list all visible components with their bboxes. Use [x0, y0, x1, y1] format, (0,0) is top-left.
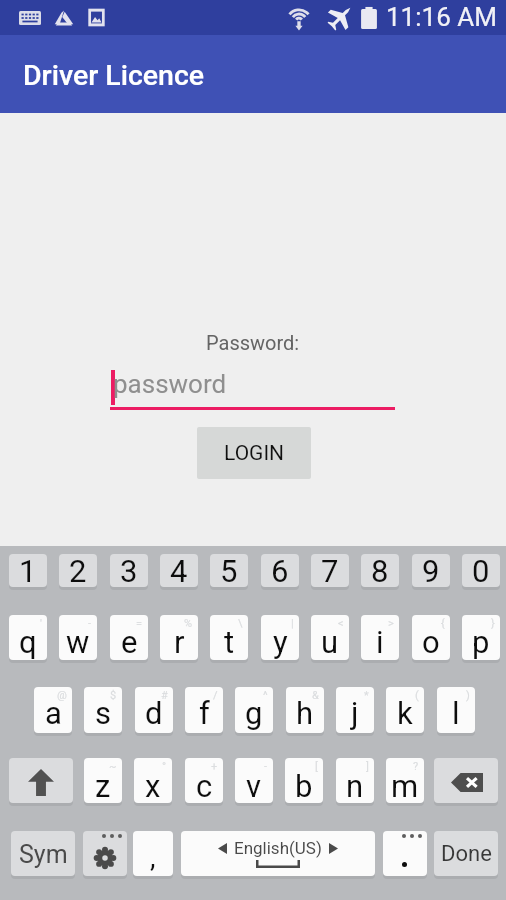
button[interactable]: e — [110, 615, 148, 660]
staticText: a — [45, 695, 62, 731]
button[interactable]: m — [386, 758, 424, 803]
button[interactable]: w — [59, 615, 97, 660]
staticText: 4 — [170, 554, 188, 586]
staticText: LOGIN — [224, 441, 285, 466]
button[interactable]: d — [135, 687, 173, 733]
button[interactable]: r — [160, 615, 198, 660]
staticText: s — [95, 695, 111, 731]
button[interactable]: l — [437, 687, 475, 733]
button[interactable]: p — [462, 615, 500, 660]
button[interactable]: Password input field — [110, 366, 395, 410]
button[interactable]: h — [286, 687, 324, 733]
staticText: - — [264, 760, 268, 773]
button[interactable]: 3 — [110, 554, 148, 587]
staticText: 9 — [422, 554, 440, 586]
staticText: = — [136, 617, 143, 630]
button[interactable]: Symbols — [11, 831, 75, 876]
button[interactable]: LOGIN — [197, 427, 311, 479]
staticText: Password: — [206, 331, 300, 354]
staticText: 8 — [371, 554, 389, 586]
staticText: 5 — [220, 554, 238, 586]
staticText: 1 — [19, 554, 37, 586]
button[interactable]: j — [336, 687, 374, 733]
button[interactable]: Backspace — [434, 758, 498, 803]
staticText: f — [199, 695, 210, 731]
button[interactable]: t — [210, 615, 248, 660]
staticText: ? — [413, 760, 419, 773]
button[interactable]: 8 — [361, 554, 399, 587]
button[interactable]: Keyboard settings — [83, 831, 127, 876]
staticText: Driver Licence — [23, 59, 205, 92]
staticText: 11:16 AM — [386, 2, 497, 32]
button[interactable]: u — [311, 615, 349, 660]
button[interactable]: 7 — [311, 554, 349, 587]
staticText: r — [174, 624, 185, 660]
staticText: * — [364, 689, 369, 702]
button[interactable]: 1 — [9, 554, 47, 587]
staticText: password — [113, 369, 227, 399]
staticText: @ — [57, 689, 67, 702]
staticText: ) — [466, 689, 470, 702]
staticText: x — [145, 768, 161, 803]
staticText: Sym — [19, 840, 68, 869]
staticText: l — [452, 695, 460, 731]
button[interactable]: x — [134, 758, 172, 803]
button[interactable]: c — [185, 758, 223, 803]
button[interactable]: s — [84, 687, 122, 733]
button[interactable]: Space, English (US) — [181, 831, 375, 876]
staticText: { — [441, 617, 445, 630]
staticText: 7 — [321, 554, 339, 586]
staticText: h — [296, 695, 314, 731]
button[interactable]: g — [235, 687, 273, 733]
staticText: d — [145, 695, 163, 731]
button[interactable]: k — [386, 687, 424, 733]
staticText: e — [121, 624, 138, 660]
staticText: [ — [315, 760, 318, 773]
button[interactable]: 2 — [59, 554, 97, 587]
staticText: ] — [366, 760, 369, 773]
staticText: ( — [415, 689, 419, 702]
button[interactable]: f — [185, 687, 223, 733]
staticText: v — [246, 768, 262, 803]
staticText: $ — [110, 689, 117, 702]
staticText: % — [184, 617, 193, 630]
staticText: i — [376, 624, 384, 660]
button[interactable]: Shift — [9, 758, 73, 803]
staticText: + — [211, 760, 218, 773]
button[interactable]: o — [412, 615, 450, 660]
button[interactable]: v — [235, 758, 273, 803]
staticText: } — [491, 617, 495, 630]
button[interactable]: Period — [383, 831, 427, 876]
staticText: u — [321, 624, 339, 660]
button[interactable]: q — [9, 615, 47, 660]
button[interactable]: 9 — [412, 554, 450, 587]
staticText: 2 — [69, 554, 87, 586]
button[interactable]: Done — [434, 831, 498, 876]
button[interactable]: a — [34, 687, 72, 733]
button[interactable]: i — [361, 615, 399, 660]
button[interactable]: 6 — [261, 554, 299, 587]
staticText: | — [291, 617, 294, 630]
staticText: # — [161, 689, 168, 702]
staticText: z — [95, 768, 111, 803]
staticText: 3 — [120, 554, 138, 586]
button[interactable]: 5 — [210, 554, 248, 587]
staticText: w — [66, 624, 90, 660]
staticText: , — [150, 841, 156, 874]
staticText: b — [295, 768, 313, 803]
button[interactable]: n — [336, 758, 374, 803]
staticText: 6 — [271, 554, 289, 586]
button[interactable]: z — [84, 758, 122, 803]
staticText: < — [338, 617, 344, 630]
staticText: ~ — [109, 760, 117, 773]
staticText: o — [422, 624, 440, 660]
button[interactable]: b — [285, 758, 323, 803]
button[interactable]: 0 — [462, 554, 500, 587]
button[interactable]: , — [133, 831, 173, 876]
staticText: \ — [238, 617, 243, 630]
button[interactable]: 4 — [160, 554, 198, 587]
staticText: k — [397, 695, 413, 731]
button[interactable]: y — [261, 615, 299, 660]
staticText: ' — [40, 617, 42, 630]
staticText: n — [346, 768, 364, 803]
